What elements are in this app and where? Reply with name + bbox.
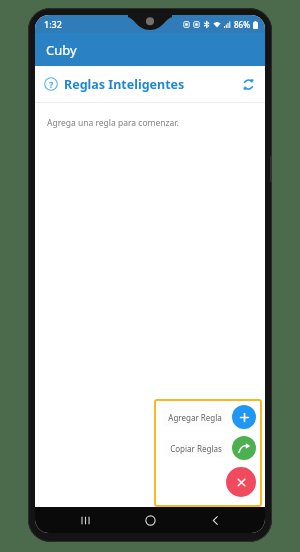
button[interactable]: Recents xyxy=(70,507,100,533)
button[interactable]: Close menu xyxy=(226,467,256,497)
button[interactable]: Sync xyxy=(240,76,256,92)
button[interactable]: Home xyxy=(135,507,165,533)
button[interactable]: Back xyxy=(200,507,230,533)
staticText: Cuby xyxy=(46,41,77,59)
staticText: Reglas Inteligentes xyxy=(64,76,185,93)
staticText: 1:32 xyxy=(44,18,62,30)
staticText: Agregar Regla xyxy=(168,412,222,423)
staticText: Copiar Reglas xyxy=(170,443,222,454)
staticText: 86% xyxy=(234,19,250,30)
button[interactable]: Help xyxy=(44,77,58,91)
button[interactable]: Copiar Reglas xyxy=(165,436,256,460)
button[interactable]: Agregar Regla xyxy=(163,405,256,429)
staticText: ? xyxy=(49,78,54,90)
staticText: Agrega una regla para comenzar. xyxy=(47,117,179,129)
